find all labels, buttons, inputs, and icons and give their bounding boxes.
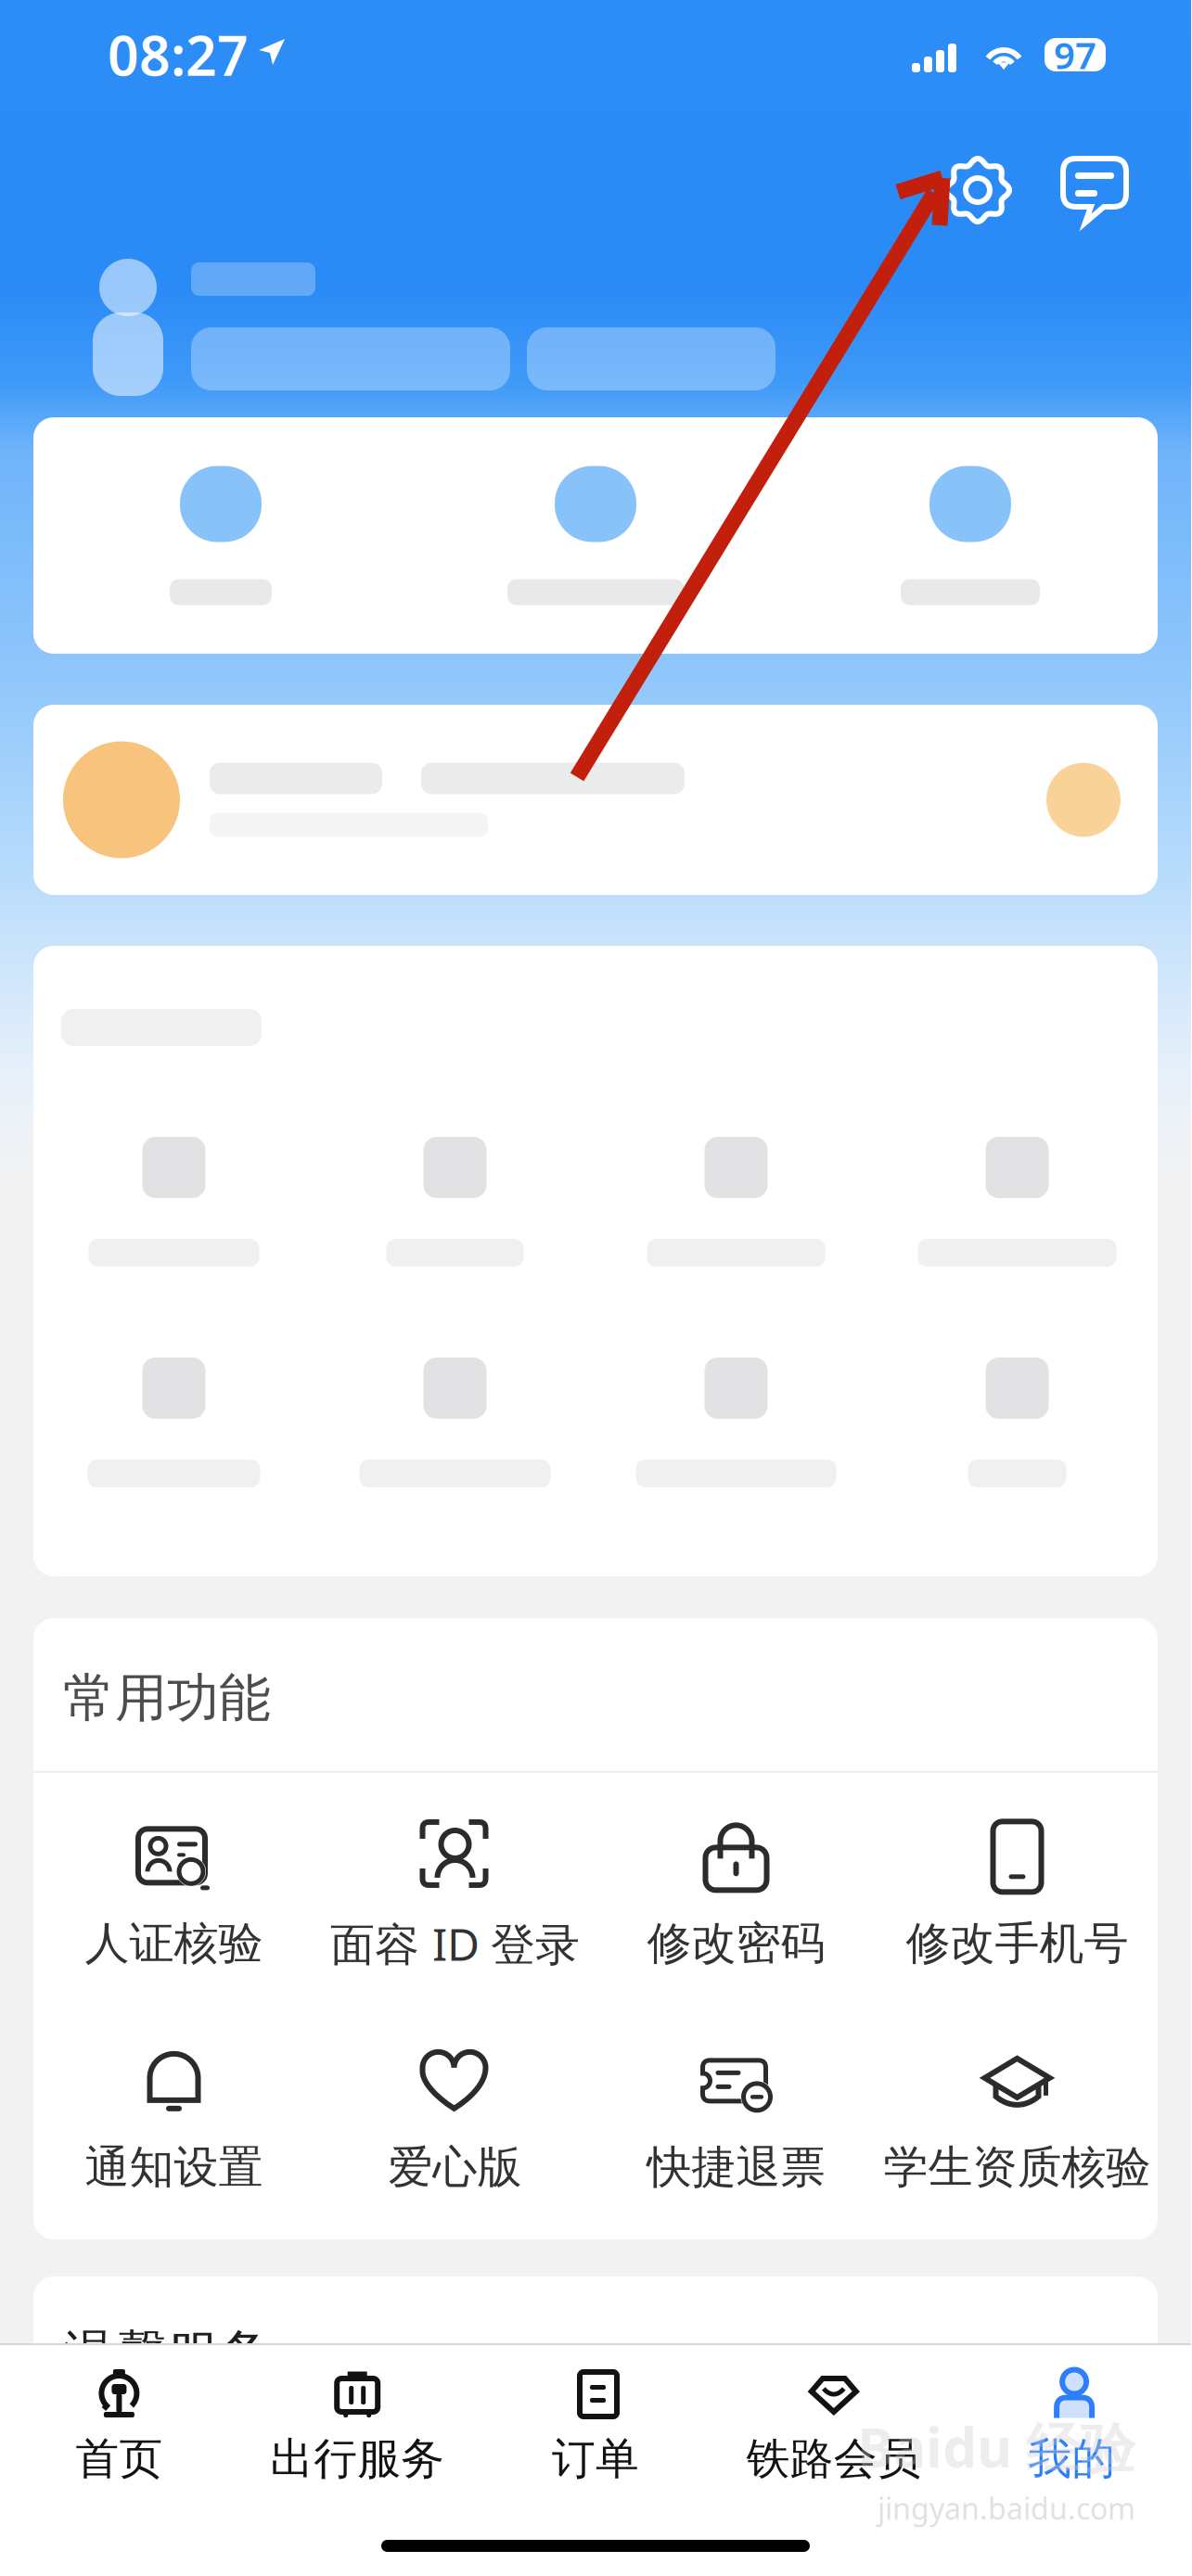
staticText: 温馨服务 bbox=[63, 2323, 271, 2387]
button[interactable]: 爱心版 bbox=[314, 2018, 596, 2221]
button[interactable]: 首页 bbox=[0, 2366, 238, 2485]
button[interactable]: 通知设置 bbox=[33, 2018, 314, 2221]
staticText: 快捷退票 bbox=[647, 2140, 825, 2195]
button[interactable]: 人证核验 bbox=[33, 1794, 314, 1997]
button[interactable]: 我的 bbox=[953, 2366, 1191, 2485]
staticText: 97 bbox=[1054, 30, 1096, 79]
staticText: 学生资质核验 bbox=[884, 2140, 1151, 2195]
staticText: 通知设置 bbox=[85, 2140, 263, 2195]
button[interactable]: 修改密码 bbox=[596, 1794, 877, 1997]
button[interactable]: 出行服务 bbox=[238, 2366, 476, 2485]
staticText: 修改密码 bbox=[647, 1916, 825, 1971]
staticText: 面容 ID 登录 bbox=[330, 1914, 580, 1973]
button[interactable]: 修改手机号 bbox=[877, 1794, 1158, 1997]
staticText: 常用功能 bbox=[63, 1666, 271, 1730]
staticText: 铁路会员 bbox=[747, 2432, 921, 2485]
staticText: 08:27 bbox=[108, 19, 249, 91]
button[interactable]: 面容 ID 登录 bbox=[314, 1792, 596, 1999]
staticText: jingyan.baidu.com bbox=[878, 2488, 1135, 2528]
button[interactable]: 学生资质核验 bbox=[877, 2018, 1158, 2221]
staticText: 修改手机号 bbox=[906, 1916, 1128, 1971]
staticText: 人证核验 bbox=[85, 1916, 263, 1971]
button[interactable]: 订单 bbox=[476, 2366, 715, 2485]
button[interactable]: 快捷退票 bbox=[596, 2018, 877, 2221]
staticText: 出行服务 bbox=[270, 2432, 445, 2485]
staticText: 首页 bbox=[76, 2432, 163, 2485]
button[interactable]: Settings bbox=[942, 155, 1013, 225]
button[interactable]: 铁路会员 bbox=[715, 2366, 953, 2485]
staticText: Baidu 经验 bbox=[857, 2410, 1135, 2483]
staticText: 爱心版 bbox=[388, 2140, 522, 2195]
staticText: 我的 bbox=[1028, 2432, 1116, 2485]
staticText: 订单 bbox=[552, 2432, 639, 2485]
button[interactable]: Messages bbox=[1059, 155, 1132, 225]
